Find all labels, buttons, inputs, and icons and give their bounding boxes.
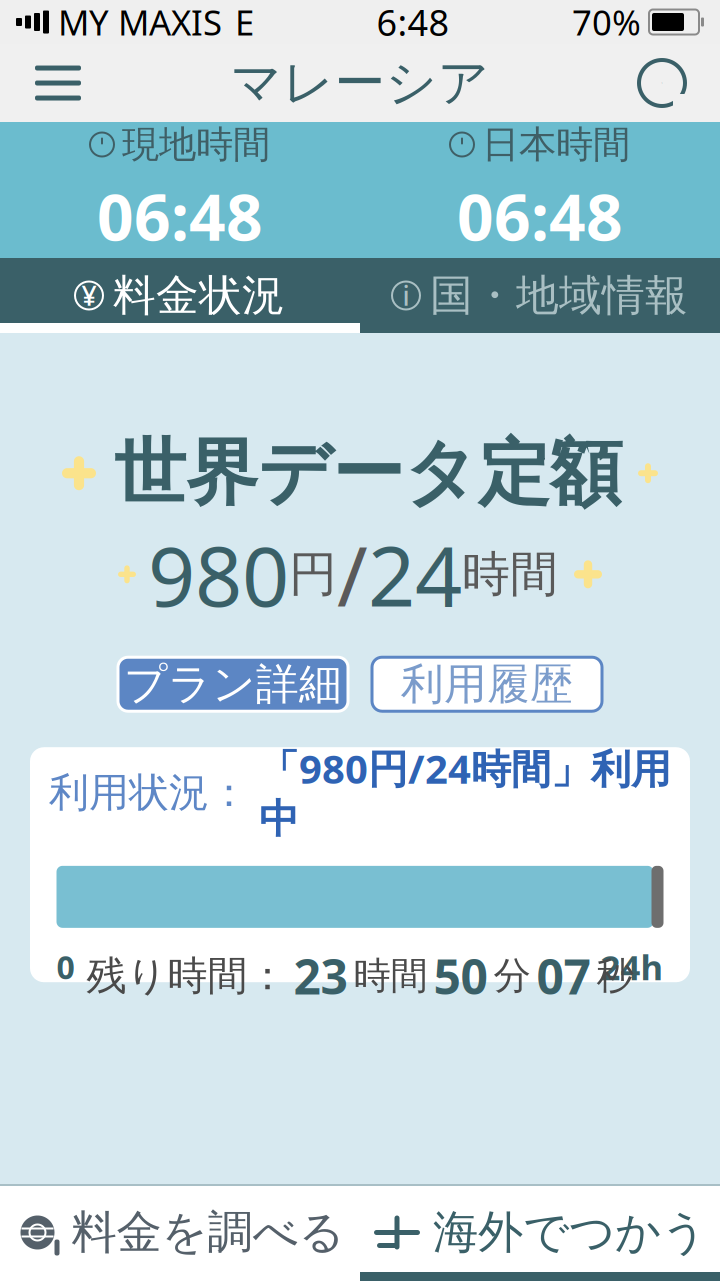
staticText: 06:48 [97, 173, 263, 258]
staticText: 時間 [462, 545, 558, 604]
staticText: 残り時間： [86, 951, 287, 1000]
staticText: 円 [289, 545, 337, 604]
staticText: 分 [493, 953, 530, 999]
staticText: 国・地域情報 [430, 269, 688, 322]
staticText: 23 [293, 944, 347, 1008]
button[interactable]: i [360, 258, 720, 333]
staticText: 現地時間 [122, 122, 270, 167]
staticText: マレーシア [230, 52, 489, 114]
staticText: 利用状況： [49, 768, 249, 817]
button[interactable]: 海外でつかう [360, 1184, 720, 1281]
staticText: プラン詳細 [124, 658, 342, 710]
staticText: E [235, 0, 254, 45]
staticText: i [402, 278, 409, 313]
button[interactable]: 利用履歴 [372, 657, 602, 711]
staticText: 「980円/24時間」利用中 [259, 742, 671, 844]
staticText: 24 [368, 519, 462, 629]
button[interactable]: Refresh [622, 44, 702, 122]
staticText: 0 [56, 946, 74, 988]
button[interactable]: 料金を調べる [0, 1184, 360, 1281]
staticText: ¥ [81, 278, 96, 313]
staticText: 時間 [353, 953, 427, 999]
button[interactable]: プラン詳細 [118, 657, 348, 711]
staticText: 980 [148, 519, 289, 629]
button[interactable]: Menu [18, 44, 98, 122]
staticText: 秒 [596, 953, 633, 999]
staticText: 料金状況 [113, 269, 285, 322]
staticText: 70% [572, 0, 641, 45]
staticText: MY MAXIS [58, 0, 222, 45]
staticText: / [337, 519, 368, 629]
staticText: 24h [600, 944, 663, 990]
staticText: 料金を調べる [71, 1205, 344, 1260]
staticText: 50 [433, 944, 487, 1008]
staticText: 世界データ定額 [114, 429, 622, 517]
staticText: 海外でつかう [433, 1205, 707, 1260]
staticText: 06:48 [457, 173, 623, 258]
staticText: 6:48 [376, 0, 449, 46]
button[interactable]: ¥ [0, 258, 360, 333]
staticText: 利用履歴 [401, 658, 573, 710]
staticText: 07 [536, 944, 590, 1008]
staticText: 日本時間 [482, 122, 630, 167]
